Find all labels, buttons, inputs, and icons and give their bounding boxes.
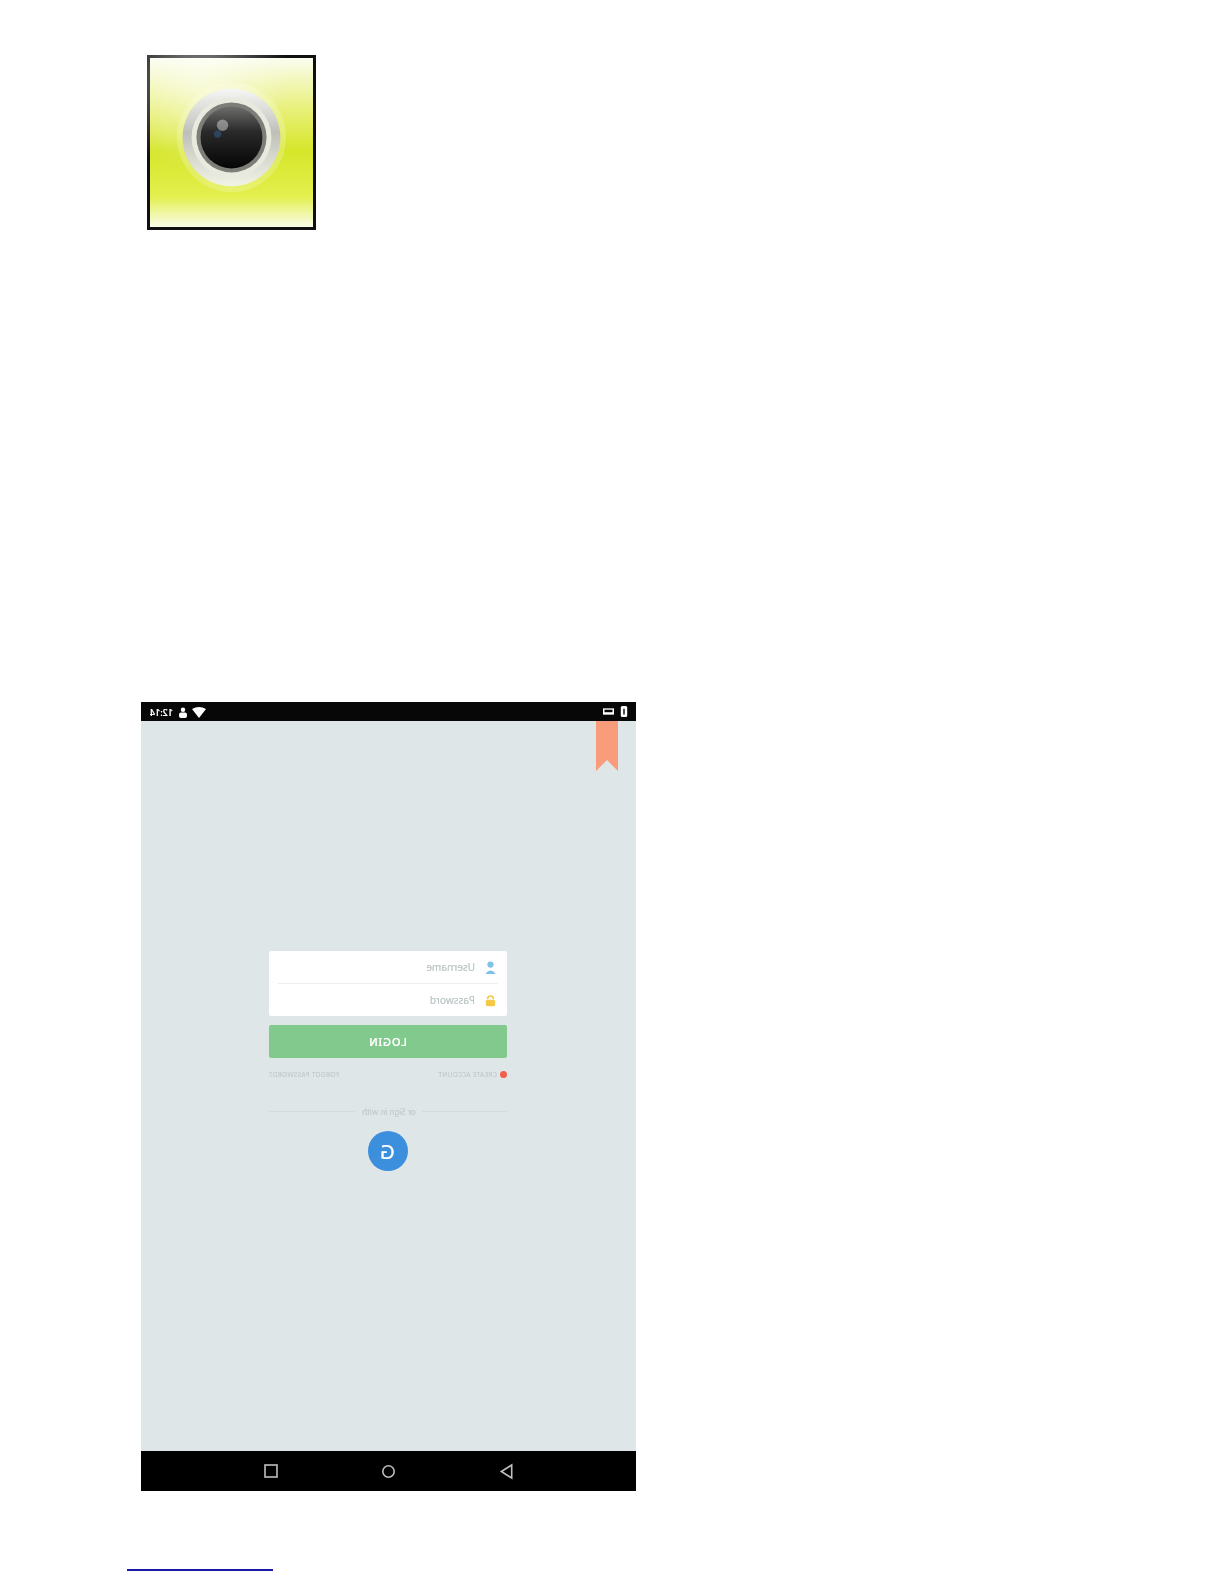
staticText: Username [426,960,475,974]
staticText: CREATE ACCOUNT [438,1070,497,1079]
button[interactable]: LOGIN [269,1025,507,1058]
button[interactable]: CREATE ACCOUNT [438,1070,507,1079]
button[interactable]: Username [269,951,507,983]
button[interactable]: FORGOT PASSWORD? [269,1070,339,1079]
staticText: or Sign in with [357,1106,420,1117]
staticText: G [380,1138,395,1165]
staticText: 12:14 [149,706,173,718]
button[interactable]: Back [490,1454,524,1488]
button[interactable]: Home [372,1454,406,1488]
staticText: Password [429,993,475,1007]
button[interactable]: Sign in with Google [368,1131,408,1171]
button[interactable]: Recent apps [254,1454,288,1488]
staticText: LOGIN [368,1034,407,1049]
staticText: FORGOT PASSWORD? [269,1070,339,1079]
button[interactable]: Password [269,984,507,1016]
other: Bookmark [596,721,618,771]
